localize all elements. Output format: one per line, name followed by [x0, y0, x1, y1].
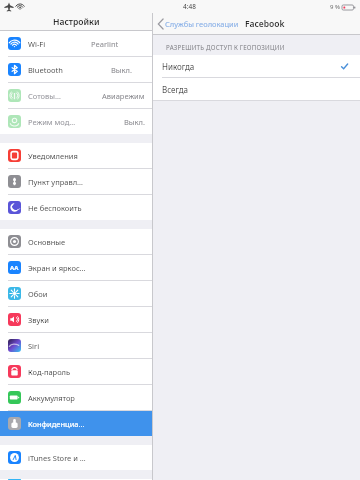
staticText: Wi-Fi — [28, 39, 46, 49]
staticText: Уведомления — [28, 151, 78, 161]
button[interactable]: Обои — [0, 281, 152, 306]
button[interactable]: Siri — [0, 333, 152, 358]
staticText: Выкл. — [111, 65, 132, 75]
staticText: Режим модема — [28, 117, 76, 127]
button[interactable]: Режим модема — [0, 109, 152, 134]
staticText: Службы геолокации — [165, 19, 239, 29]
staticText: 9 % — [330, 3, 340, 11]
staticText: Обои — [28, 289, 48, 299]
button[interactable]: Основные — [0, 229, 152, 254]
button[interactable]: Wi-Fi — [0, 31, 152, 56]
staticText: Никогда — [162, 61, 195, 72]
staticText: Выкл. — [124, 117, 145, 127]
staticText: Pearlint — [91, 39, 119, 49]
button[interactable]: Bluetooth — [0, 57, 152, 82]
staticText: Bluetooth — [28, 65, 63, 75]
staticText: Сотовые данные — [28, 91, 65, 101]
staticText: 4:48 — [183, 2, 196, 11]
staticText: Авиарежим — [102, 91, 145, 101]
button[interactable]: Никогда — [153, 55, 360, 77]
button[interactable]: Не беспокоить — [0, 195, 152, 220]
button[interactable]: AA — [0, 255, 152, 280]
staticText: Конфиденциальность — [28, 419, 86, 429]
staticText: Экран и яркость — [28, 263, 86, 273]
staticText: Не беспокоить — [28, 203, 82, 213]
button[interactable]: Код-пароль — [0, 359, 152, 384]
staticText: Facebook — [245, 18, 285, 30]
button[interactable]: Всегда — [153, 78, 360, 100]
button[interactable]: Сотовые данные — [0, 83, 152, 108]
button[interactable]: iTunes Store и App Store — [0, 445, 152, 470]
staticText: Код-пароль — [28, 367, 71, 377]
staticText: iTunes Store и App Store — [28, 453, 86, 463]
staticText: Аккумулятор — [28, 393, 75, 403]
staticText: AA — [10, 264, 19, 272]
staticText: Всегда — [162, 84, 188, 95]
button[interactable]: Аккумулятор — [0, 385, 152, 410]
button[interactable]: Пункт управления — [0, 169, 152, 194]
staticText: Звуки — [28, 315, 49, 325]
button[interactable]: Конфиденциальность — [0, 411, 152, 436]
staticText: Siri — [28, 341, 40, 351]
staticText: Настройки — [53, 16, 100, 28]
button[interactable]: Уведомления — [0, 143, 152, 168]
button[interactable]: Back to Location Services — [156, 17, 241, 31]
staticText: Пункт управления — [28, 177, 86, 187]
staticText: РАЗРЕШИТЬ ДОСТУП К ГЕОПОЗИЦИИ — [166, 43, 285, 51]
button[interactable]: Звуки — [0, 307, 152, 332]
staticText: Основные — [28, 237, 66, 247]
button[interactable]: Почта — [0, 479, 152, 480]
